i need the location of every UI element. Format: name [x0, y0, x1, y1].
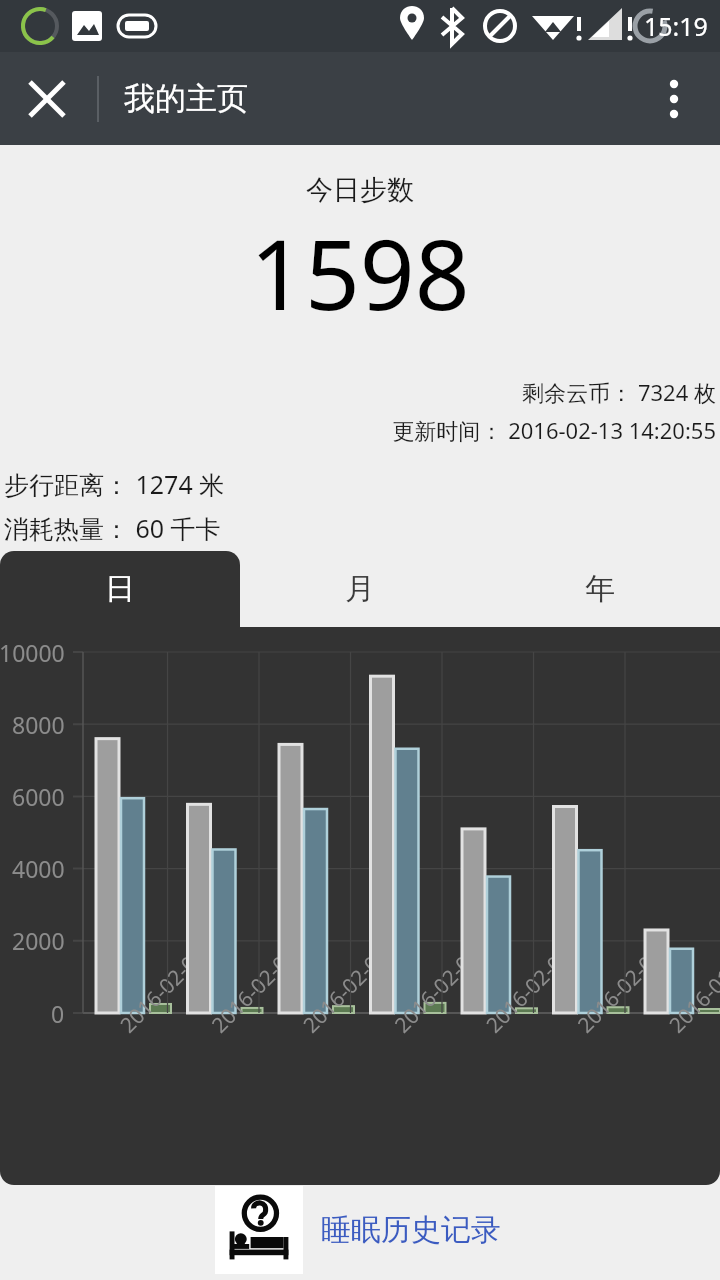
staticText: 剩余云币： 7324 枚: [522, 377, 716, 407]
staticText: 更新时间： 2016-02-13 14:20:55: [392, 415, 716, 445]
staticText: 今日步数: [306, 173, 414, 207]
staticText: 睡眠历史记录: [321, 1211, 501, 1249]
staticText: 步行距离： 1274 米: [4, 467, 225, 501]
button[interactable]: Close: [0, 52, 93, 145]
staticText: 月: [345, 570, 375, 608]
button[interactable]: 年: [480, 551, 720, 627]
staticText: 我的主页: [124, 79, 248, 118]
staticText: 15:19: [644, 9, 708, 43]
staticText: 年: [585, 570, 615, 608]
staticText: 日: [105, 570, 135, 608]
staticText: 消耗热量： 60 千卡: [4, 511, 221, 545]
button[interactable]: More options: [627, 52, 720, 145]
button[interactable]: 睡眠历史记录: [215, 1180, 720, 1280]
staticText: 1598: [250, 207, 470, 338]
button[interactable]: 月: [240, 551, 480, 627]
button[interactable]: 日: [0, 551, 240, 627]
